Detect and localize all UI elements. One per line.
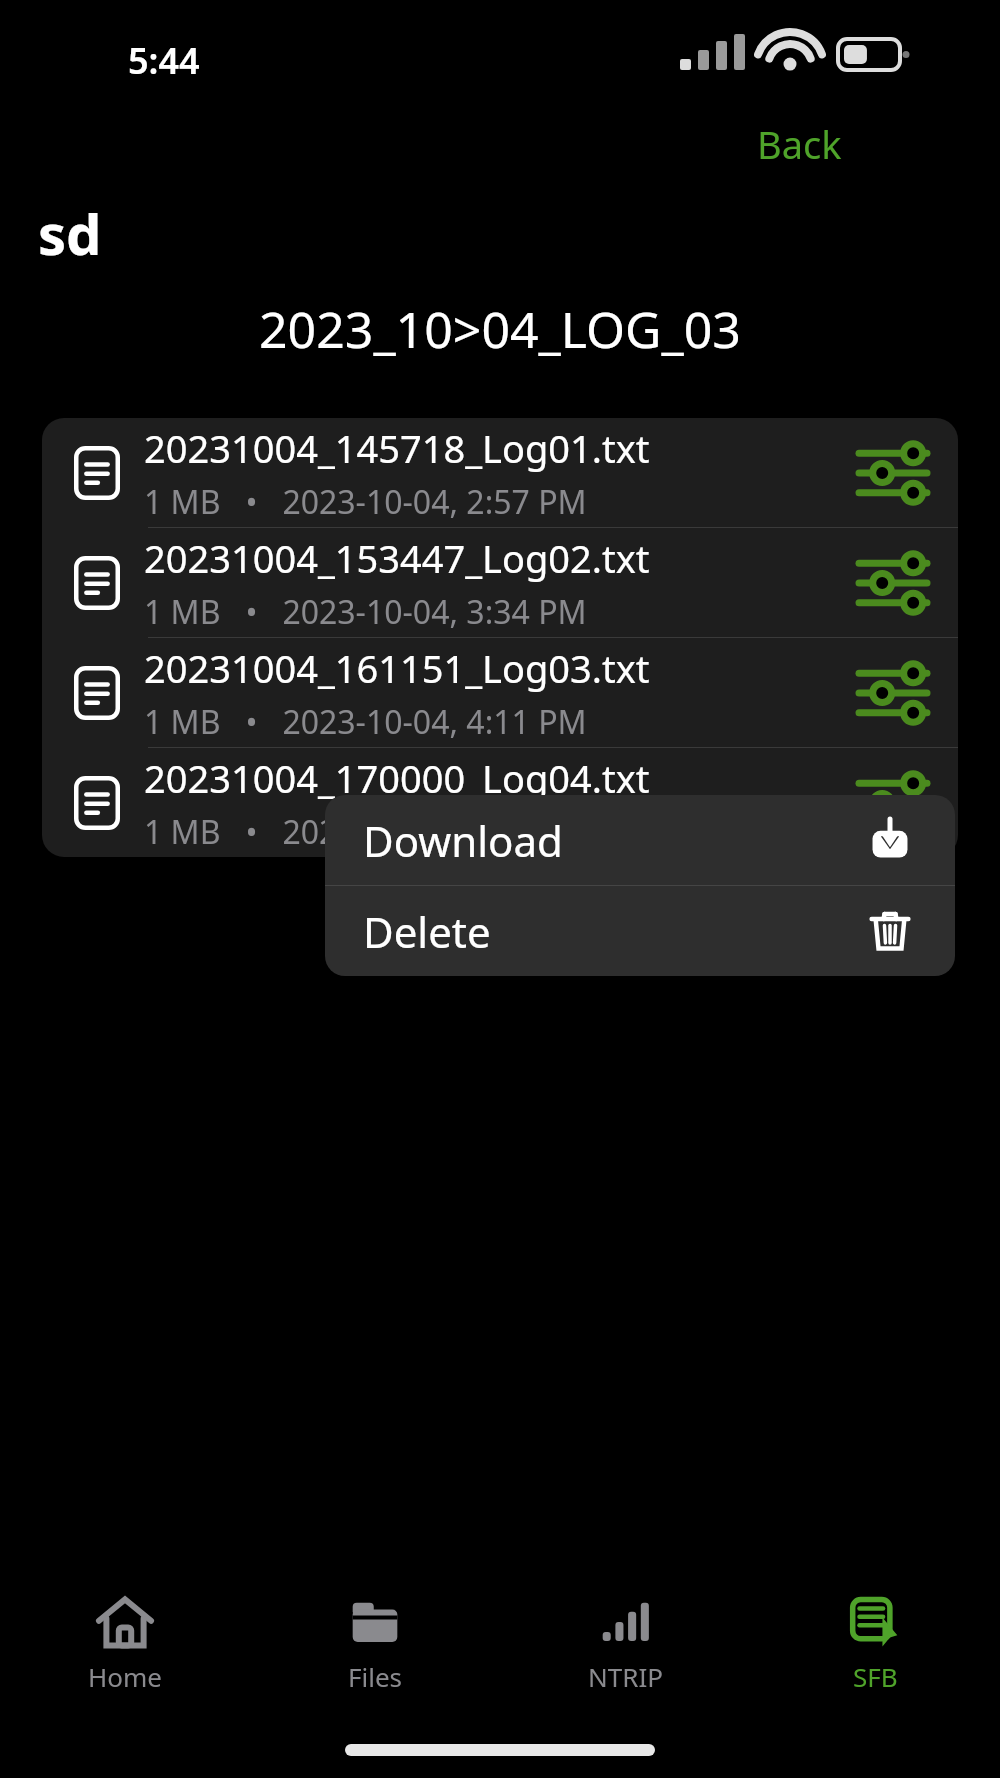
button[interactable]: Home [0,1588,250,1700]
staticText: Download [363,812,867,869]
button[interactable]: Options [850,540,936,626]
button[interactable]: 20231004_153447_Log02.txt [42,528,958,637]
staticText: 20231004_170000_Log04.txt [144,752,650,804]
staticText: Back [757,118,842,170]
staticText: 20231004_161151_Log03.txt [144,642,650,694]
staticText: 20231004_153447_Log02.txt [144,532,650,584]
staticText: NTRIP [588,1659,663,1694]
button[interactable]: SFB [750,1588,1000,1700]
button[interactable]: Back [749,110,850,178]
button[interactable]: Download [325,795,955,885]
staticText: 1 MB • 2023-10-04, 2:57 PM [144,480,587,524]
button[interactable]: Options [850,430,936,516]
button[interactable]: 20231004_170000_Log04.txt [42,748,958,857]
staticText: SFB [853,1659,898,1694]
button[interactable]: Options [850,650,936,736]
staticText: 1 MB • 2023-10-04, 3:34 PM [144,590,587,634]
staticText: 1 MB • 2023-10-04, 5:00 PM [144,810,587,854]
staticText: Files [348,1659,403,1694]
button[interactable]: 20231004_161151_Log03.txt [42,638,958,747]
staticText: 20231004_145718_Log01.txt [144,422,650,474]
staticText: sd [38,195,102,271]
staticText: 2023_10>04_LOG_03 [259,295,741,363]
button[interactable]: Options [850,760,936,846]
button[interactable]: Files [250,1588,500,1700]
button[interactable]: NTRIP [500,1588,750,1700]
button[interactable]: 20231004_145718_Log01.txt [42,418,958,527]
button[interactable]: Delete [325,886,955,976]
staticText: 1 MB • 2023-10-04, 4:11 PM [144,700,587,744]
staticText: Home [88,1659,162,1694]
staticText: 5:44 [128,36,200,85]
staticText: Delete [363,903,867,960]
